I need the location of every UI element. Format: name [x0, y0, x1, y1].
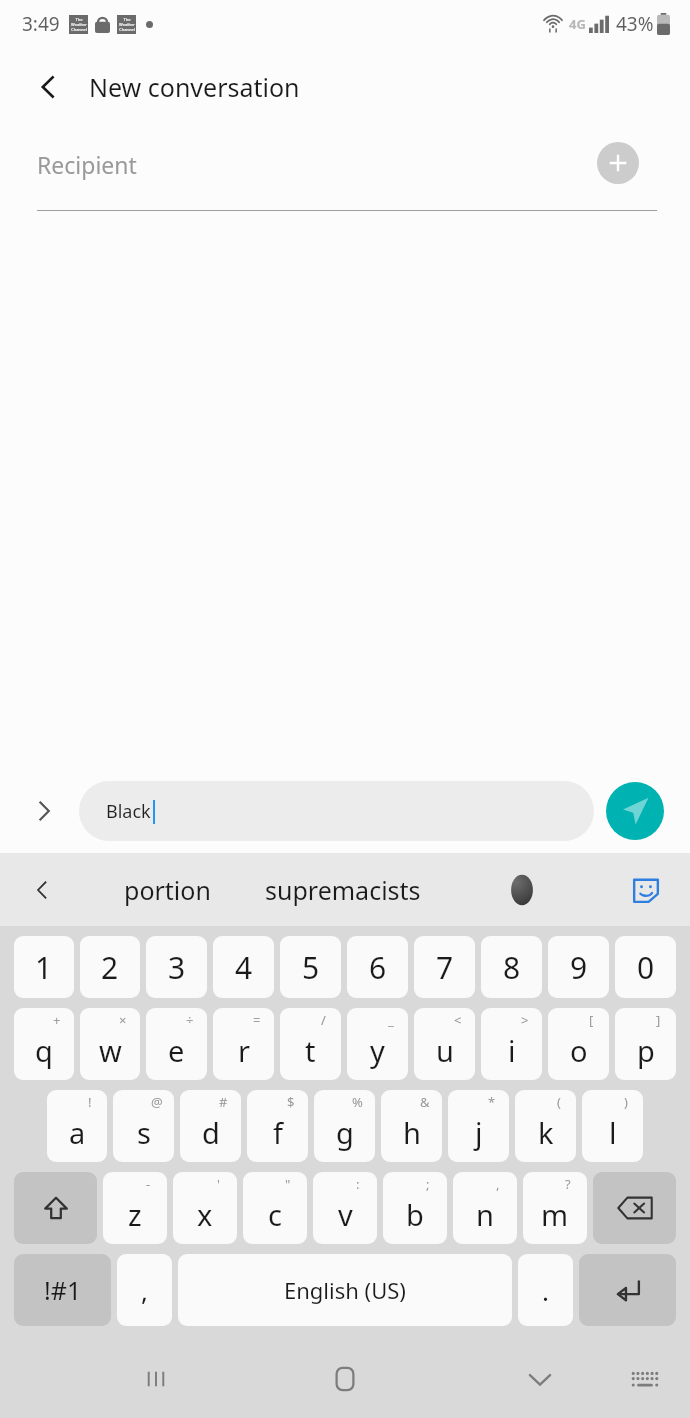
button[interactable]: 0: [615, 936, 676, 998]
staticText: t: [305, 1031, 316, 1070]
button[interactable]: -: [103, 1172, 167, 1244]
staticText: portion: [124, 873, 211, 907]
button[interactable]: ×: [80, 1008, 140, 1080]
button[interactable]: Enter: [579, 1254, 676, 1326]
staticText: !: [88, 1093, 92, 1111]
staticText: _: [388, 1011, 394, 1029]
staticText: The Weather Channel: [119, 17, 135, 32]
staticText: b: [406, 1195, 424, 1234]
button[interactable]: Voice input: [500, 868, 544, 912]
button[interactable]: :: [313, 1172, 377, 1244]
staticText: p: [637, 1031, 655, 1070]
button[interactable]: ?: [523, 1172, 587, 1244]
button[interactable]: portion: [124, 873, 211, 907]
button[interactable]: %: [314, 1090, 375, 1162]
button[interactable]: &: [381, 1090, 442, 1162]
staticText: /: [321, 1011, 326, 1029]
button[interactable]: Hide keyboard: [512, 1351, 568, 1407]
button[interactable]: Recents: [128, 1351, 184, 1407]
button[interactable]: 1: [14, 936, 74, 998]
staticText: 0: [637, 947, 655, 988]
button[interactable]: *: [448, 1090, 509, 1162]
staticText: 1: [35, 947, 53, 988]
button[interactable]: Expand: [20, 787, 68, 835]
button[interactable]: _: [347, 1008, 408, 1080]
button[interactable]: ': [173, 1172, 237, 1244]
staticText: 7: [436, 947, 454, 988]
staticText: e: [168, 1031, 185, 1070]
button[interactable]: 7: [414, 936, 475, 998]
button[interactable]: /: [280, 1008, 341, 1080]
button[interactable]: @: [113, 1090, 174, 1162]
button[interactable]: Black: [79, 781, 594, 841]
button[interactable]: =: [213, 1008, 274, 1080]
button[interactable]: $: [247, 1090, 308, 1162]
staticText: x: [197, 1195, 213, 1234]
staticText: v: [338, 1195, 353, 1234]
button[interactable]: 3: [146, 936, 207, 998]
button[interactable]: <: [414, 1008, 475, 1080]
staticText: r: [238, 1031, 250, 1070]
button[interactable]: #: [180, 1090, 241, 1162]
button[interactable]: 4: [213, 936, 274, 998]
button[interactable]: ,: [117, 1254, 172, 1326]
button[interactable]: ): [582, 1090, 643, 1162]
button[interactable]: 2: [80, 936, 140, 998]
staticText: #: [219, 1093, 228, 1111]
staticText: 3:49: [22, 11, 60, 37]
button[interactable]: ": [243, 1172, 307, 1244]
staticText: 3: [168, 947, 186, 988]
button[interactable]: Send: [606, 782, 664, 840]
staticText: q: [35, 1031, 53, 1070]
button[interactable]: !#1: [14, 1254, 111, 1326]
button[interactable]: ÷: [146, 1008, 207, 1080]
staticText: ×: [119, 1011, 127, 1029]
staticText: c: [268, 1195, 282, 1234]
button[interactable]: English (US): [178, 1254, 512, 1326]
button[interactable]: ;: [383, 1172, 447, 1244]
staticText: 6: [369, 947, 387, 988]
button[interactable]: Shift: [14, 1172, 97, 1244]
staticText: !#1: [44, 1273, 82, 1307]
button[interactable]: .: [518, 1254, 573, 1326]
staticText: j: [475, 1113, 483, 1152]
button[interactable]: supremacists: [265, 873, 421, 907]
staticText: &: [420, 1093, 430, 1111]
staticText: y: [370, 1031, 385, 1070]
staticText: ?: [565, 1175, 571, 1193]
button[interactable]: ]: [615, 1008, 676, 1080]
staticText: a: [69, 1113, 86, 1152]
staticText: English (US): [284, 1275, 406, 1305]
button[interactable]: ,: [453, 1172, 517, 1244]
button[interactable]: Previous: [20, 868, 64, 912]
staticText: 8: [503, 947, 521, 988]
staticText: supremacists: [265, 873, 421, 907]
button[interactable]: Keyboard layout: [620, 1354, 670, 1404]
staticText: New conversation: [89, 70, 300, 104]
button[interactable]: 8: [481, 936, 542, 998]
staticText: ;: [426, 1175, 430, 1193]
staticText: <: [454, 1011, 462, 1029]
button[interactable]: Back: [22, 61, 74, 113]
button[interactable]: Stickers: [624, 868, 668, 912]
button[interactable]: +: [14, 1008, 74, 1080]
button[interactable]: 6: [347, 936, 408, 998]
button[interactable]: Home: [315, 1349, 375, 1409]
button[interactable]: (: [515, 1090, 576, 1162]
button[interactable]: Backspace: [593, 1172, 676, 1244]
staticText: ,: [496, 1175, 500, 1193]
staticText: $: [287, 1093, 295, 1111]
staticText: m: [541, 1195, 569, 1234]
staticText: 4G: [569, 15, 586, 33]
staticText: Recipient: [37, 149, 137, 180]
button[interactable]: Add recipient: [597, 142, 639, 184]
button[interactable]: 5: [280, 936, 341, 998]
staticText: ': [217, 1175, 220, 1193]
staticText: 5: [302, 947, 320, 988]
button[interactable]: !: [47, 1090, 107, 1162]
button[interactable]: 9: [548, 936, 609, 998]
button[interactable]: [: [548, 1008, 609, 1080]
staticText: .: [542, 1273, 549, 1308]
staticText: 43%: [616, 11, 654, 37]
button[interactable]: >: [481, 1008, 542, 1080]
